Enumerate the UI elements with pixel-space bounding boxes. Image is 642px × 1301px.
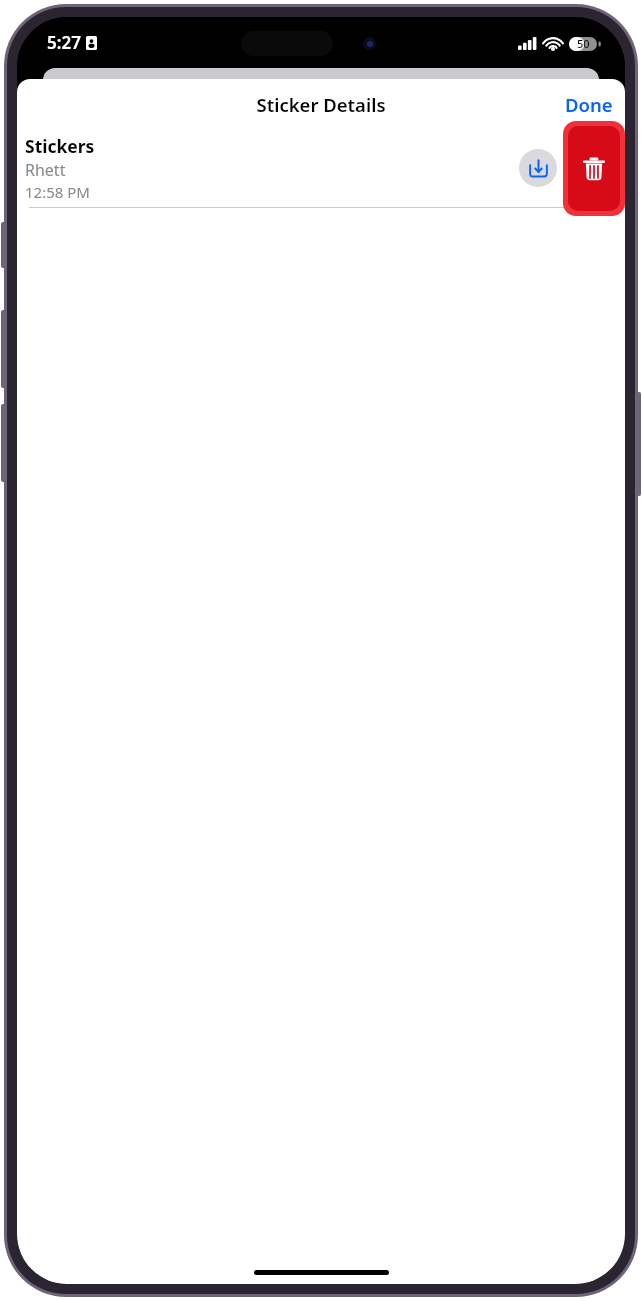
button[interactable]: Done xyxy=(553,86,625,123)
staticText: Stickers xyxy=(25,134,95,158)
staticText: 50 xyxy=(577,36,590,51)
staticText: Rhett xyxy=(25,159,66,181)
staticText: Done xyxy=(565,92,613,117)
staticText: 5:27 xyxy=(47,31,81,54)
staticText: Sticker Details xyxy=(256,92,386,117)
staticText: 12:58 PM xyxy=(25,182,90,202)
button[interactable]: Stickers xyxy=(17,129,625,207)
button[interactable]: Delete xyxy=(563,121,625,216)
button[interactable]: Save sticker xyxy=(519,149,557,187)
